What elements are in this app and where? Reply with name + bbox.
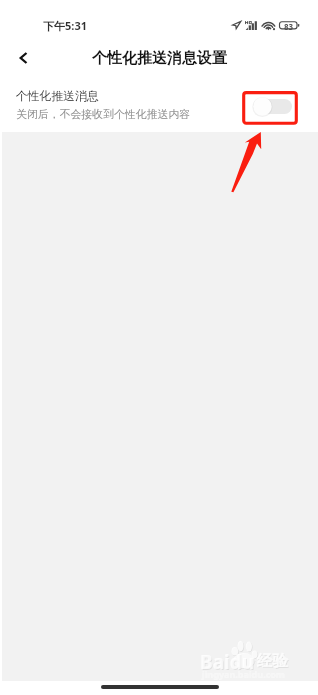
staticText: 经验 [257,651,288,671]
button[interactable]: Personalized push toggle [253,99,292,114]
staticText: jingyan.baidu.com [202,668,285,680]
staticText: 个性化推送消息 [16,89,99,104]
staticText: jingyan.baidu.com [202,668,285,680]
staticText: 关闭后，不会接收到个性化推送内容 [16,108,191,122]
staticText: Baidu [201,650,256,676]
staticText: Baidu [200,649,255,675]
button[interactable]: 个性化推送消息 [0,76,318,132]
staticText: 83 [284,21,294,32]
staticText: 下午5:31 [43,18,87,33]
button[interactable]: Back [0,40,44,76]
staticText: 经验 [258,652,289,672]
staticText: 个性化推送消息设置 [92,49,227,68]
